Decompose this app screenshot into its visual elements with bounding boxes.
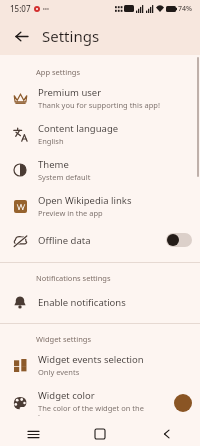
staticText: Content language: [38, 122, 119, 135]
staticText: Notifications settings: [36, 273, 111, 283]
staticText: 74%: [178, 4, 192, 14]
staticText: The color of the widget on the homescree…: [38, 403, 168, 416]
staticText: Open Wikipedia links: [38, 194, 132, 207]
button[interactable]: Content language: [0, 116, 200, 152]
button[interactable]: Enable notifications: [0, 286, 200, 318]
staticText: Premium user: [38, 86, 102, 99]
button[interactable]: Pick widget color: [174, 394, 192, 412]
button[interactable]: Back: [156, 423, 178, 445]
staticText: Theme: [38, 158, 69, 171]
staticText: Preview in the app: [38, 208, 103, 218]
staticText: Enable notifications: [38, 296, 126, 309]
staticText: Thank you for supporting this app!: [38, 100, 160, 110]
button[interactable]: Recent apps: [22, 423, 44, 445]
button[interactable]: Widget events selection: [0, 347, 200, 383]
button[interactable]: Open Wikipedia links: [0, 188, 200, 224]
staticText: Widget events selection: [38, 353, 144, 366]
button[interactable]: Widget color: [0, 383, 200, 422]
button[interactable]: Toggle: [166, 233, 192, 247]
button[interactable]: Theme: [0, 152, 200, 188]
staticText: Settings: [42, 26, 100, 46]
staticText: Only events: [38, 367, 80, 377]
staticText: 15:07: [10, 3, 31, 14]
button[interactable]: Offline data: [0, 224, 200, 256]
staticText: System default: [38, 172, 91, 182]
button[interactable]: Premium user: [0, 80, 200, 116]
staticText: App settings: [36, 67, 80, 77]
button[interactable]: Home: [89, 423, 111, 445]
staticText: Offline data: [38, 234, 91, 247]
staticText: English: [38, 136, 64, 146]
staticText: Widget settings: [36, 334, 92, 344]
staticText: Widget color: [38, 389, 95, 402]
button[interactable]: Back: [8, 23, 34, 49]
